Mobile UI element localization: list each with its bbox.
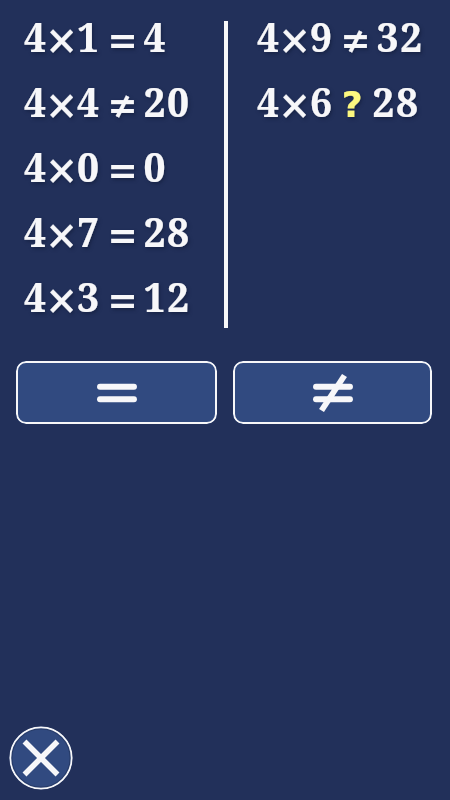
staticText: 4×9 ≠ 32 — [257, 10, 424, 63]
staticText: 4×7 = 28 — [24, 205, 191, 258]
button[interactable]: Equal — [16, 361, 217, 424]
button[interactable]: Not equal — [233, 361, 432, 424]
staticText: 4×0 = 0 — [24, 140, 168, 193]
staticText: 4×4 ≠ 20 — [24, 75, 191, 128]
staticText: 4×3 = 12 — [24, 270, 191, 323]
staticText: 4×6 ? 28 — [257, 75, 420, 128]
button[interactable]: Close — [9, 726, 73, 790]
staticText: 4×1 = 4 — [24, 10, 168, 63]
